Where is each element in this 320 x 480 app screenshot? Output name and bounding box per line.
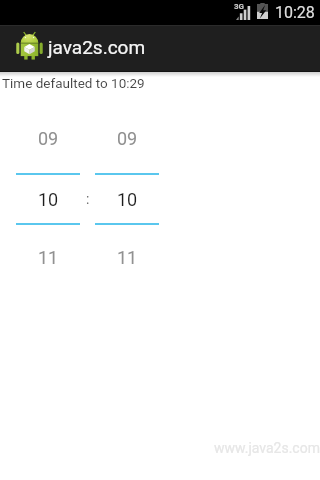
button[interactable]: 10 — [16, 175, 80, 223]
button[interactable]: 09 — [16, 103, 80, 173]
button[interactable]: 11 — [95, 225, 159, 289]
button[interactable]: 11 — [16, 225, 80, 289]
staticText: 11 — [38, 247, 59, 268]
staticText: 3G — [234, 2, 245, 11]
staticText: 09 — [38, 128, 59, 149]
staticText: 10:28 — [275, 3, 315, 22]
staticText: 11 — [117, 247, 138, 268]
staticText: www.java2s.com — [214, 440, 320, 456]
button[interactable]: App icon — [0, 25, 125, 72]
staticText: 10 — [38, 189, 59, 210]
button[interactable]: 09 — [95, 103, 159, 173]
staticText: 10 — [117, 189, 138, 210]
staticText: java2s.com — [48, 36, 146, 58]
other: App icon — [16, 31, 43, 60]
other: Battery charging — [257, 3, 268, 19]
staticText: Time defaulted to 10:29 — [2, 75, 145, 91]
staticText: : — [86, 191, 90, 207]
button[interactable]: 10 — [95, 175, 159, 223]
staticText: 09 — [117, 128, 138, 149]
other: Mobile signal, 3G — [232, 2, 251, 21]
button[interactable]: App icon — [0, 25, 320, 72]
